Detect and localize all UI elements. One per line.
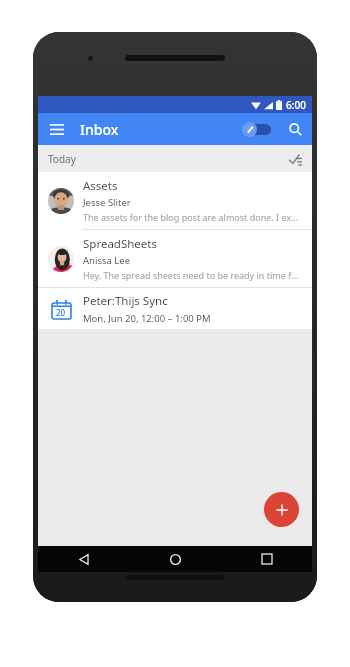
- staticText: The assets for the blog post are almost …: [83, 211, 299, 223]
- staticText: Today: [48, 152, 76, 166]
- button[interactable]: Recent apps: [221, 546, 312, 572]
- button[interactable]: Pin toggle: [242, 120, 272, 138]
- button[interactable]: Open navigation drawer: [44, 116, 70, 142]
- button[interactable]: SpreadSheets: [38, 230, 312, 287]
- button[interactable]: Search: [282, 116, 308, 142]
- button[interactable]: Home: [130, 546, 221, 572]
- staticText: Anissa Lee: [83, 254, 130, 267]
- staticText: Inbox: [80, 120, 119, 139]
- button[interactable]: 20: [38, 288, 312, 329]
- staticText: Jesse Sliter: [83, 196, 131, 209]
- staticText: 6:00: [286, 98, 306, 112]
- staticText: Hey, The spread sheets need to be ready …: [83, 269, 302, 281]
- button[interactable]: Assets: [38, 172, 312, 229]
- staticText: Peter:Thijs Sync: [83, 293, 168, 309]
- staticText: 20: [56, 307, 66, 318]
- button[interactable]: Compose: [264, 492, 299, 527]
- button[interactable]: Mark all done: [284, 148, 306, 170]
- staticText: Assets: [83, 178, 118, 194]
- button[interactable]: Back: [38, 546, 130, 572]
- staticText: SpreadSheets: [83, 236, 157, 252]
- staticText: Mon, Jun 20, 12:00 – 1:00 PM: [83, 312, 211, 325]
